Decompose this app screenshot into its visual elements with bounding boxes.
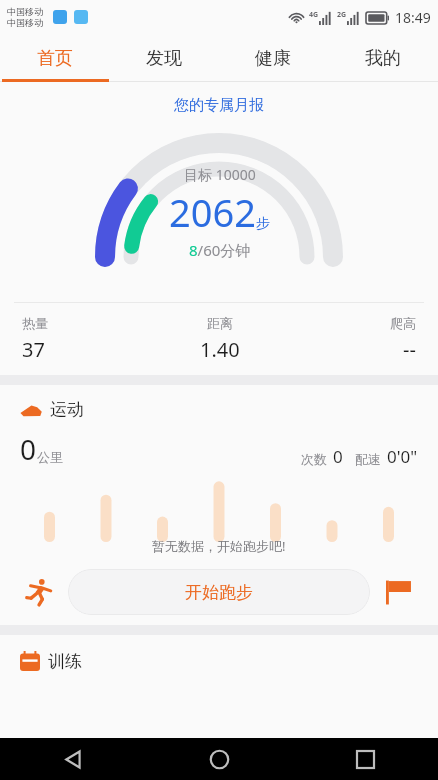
button[interactable]: Back bbox=[0, 738, 146, 780]
staticText: 37 bbox=[22, 336, 45, 363]
staticText: 健康 bbox=[255, 47, 291, 70]
staticText: -- bbox=[403, 336, 416, 363]
staticText: 训练 bbox=[48, 651, 82, 672]
staticText: 中国移动 bbox=[7, 6, 43, 17]
button[interactable]: 开始跑步 bbox=[68, 569, 370, 615]
button[interactable]: 您的专属月报 bbox=[0, 94, 438, 117]
staticText: 8/60分钟 bbox=[189, 240, 251, 260]
staticText: 配速 bbox=[355, 451, 381, 467]
staticText: 18:49 bbox=[395, 8, 431, 27]
staticText: 2G bbox=[337, 10, 347, 20]
button[interactable]: 训练 bbox=[0, 635, 438, 677]
button[interactable]: Recents bbox=[292, 738, 438, 780]
staticText: 中国移动 bbox=[7, 17, 43, 28]
staticText: 首页 bbox=[37, 47, 73, 70]
button[interactable]: Home bbox=[146, 738, 292, 780]
staticText: 您的专属月报 bbox=[174, 96, 264, 115]
staticText: 热量 bbox=[22, 315, 48, 331]
staticText: 公里 bbox=[37, 449, 63, 465]
staticText: 0'0" bbox=[387, 445, 418, 468]
staticText: 次数 bbox=[301, 451, 327, 467]
staticText: 运动 bbox=[50, 399, 84, 420]
staticText: 4G bbox=[309, 10, 319, 20]
staticText: 0 bbox=[20, 430, 37, 468]
staticText: 暂无数据，开始跑步吧! bbox=[152, 537, 286, 555]
button[interactable]: 跑步记录 bbox=[20, 573, 58, 611]
staticText: 步 bbox=[256, 215, 270, 233]
staticText: 发现 bbox=[146, 47, 182, 70]
button[interactable]: 健康 bbox=[218, 34, 328, 82]
button[interactable]: 首页 bbox=[0, 34, 109, 82]
staticText: 开始跑步 bbox=[185, 582, 253, 603]
staticText: 0 bbox=[333, 445, 343, 468]
staticText: 2062 bbox=[169, 186, 256, 238]
staticText: 爬高 bbox=[390, 315, 416, 331]
staticText: 1.40 bbox=[200, 336, 240, 363]
staticText: 距离 bbox=[207, 315, 233, 331]
button[interactable]: 目标 bbox=[380, 573, 418, 611]
button[interactable]: 我的 bbox=[328, 34, 438, 82]
staticText: 目标 10000 bbox=[184, 165, 256, 184]
button[interactable]: 运动 bbox=[0, 385, 438, 420]
staticText: 我的 bbox=[365, 47, 401, 70]
button[interactable]: 发现 bbox=[109, 34, 218, 82]
